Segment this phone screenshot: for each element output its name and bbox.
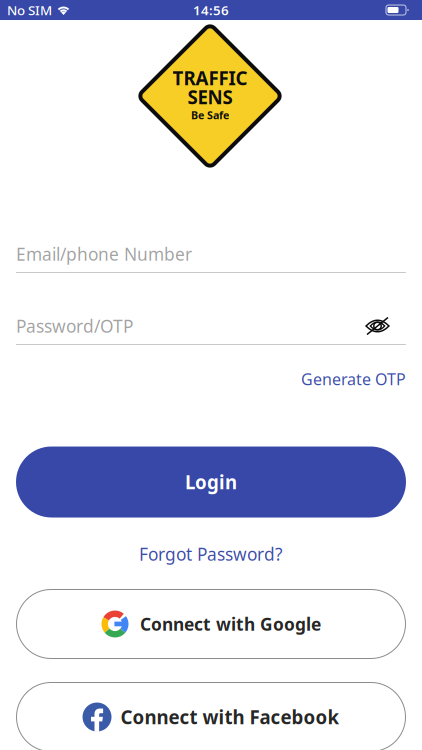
button[interactable]: Login	[16, 446, 406, 517]
button[interactable]: Connect with Facebook	[16, 682, 406, 750]
button[interactable]: Forgot Password?	[139, 543, 283, 565]
staticText: 14:56	[193, 1, 229, 19]
staticText: Login	[185, 470, 237, 494]
staticText: Email/phone Number	[16, 242, 192, 265]
staticText: Forgot Password?	[139, 542, 283, 565]
button[interactable]: Connect with Google	[16, 589, 406, 659]
staticText: Generate OTP	[301, 368, 406, 390]
staticText: Be Safe	[191, 108, 229, 122]
staticText: No SIM	[7, 1, 52, 19]
staticText: Connect with Google	[140, 612, 321, 635]
staticText: Connect with Facebook	[120, 705, 339, 729]
staticText: SENS	[187, 85, 232, 109]
staticText: Password/OTP	[16, 314, 133, 337]
button[interactable]: Generate OTP	[16, 369, 406, 389]
staticText: TRAFFIC	[172, 66, 247, 90]
button[interactable]: Show password	[365, 316, 406, 335]
